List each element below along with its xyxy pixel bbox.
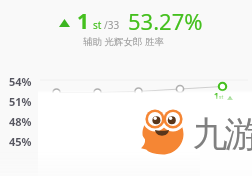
staticText: 45%	[9, 134, 32, 149]
staticText: 53.27%	[128, 6, 203, 36]
staticText: /33	[104, 18, 120, 32]
staticText: st	[219, 94, 224, 101]
staticText: 54%	[9, 74, 32, 89]
staticText: 1	[214, 90, 219, 101]
staticText: st	[93, 18, 102, 32]
staticText: 九游	[194, 112, 252, 156]
staticText: 48%	[9, 114, 32, 129]
staticText: 51%	[9, 94, 32, 109]
staticText: 1	[77, 7, 90, 36]
staticText: 辅助 光辉女郎 胜率	[83, 35, 164, 48]
